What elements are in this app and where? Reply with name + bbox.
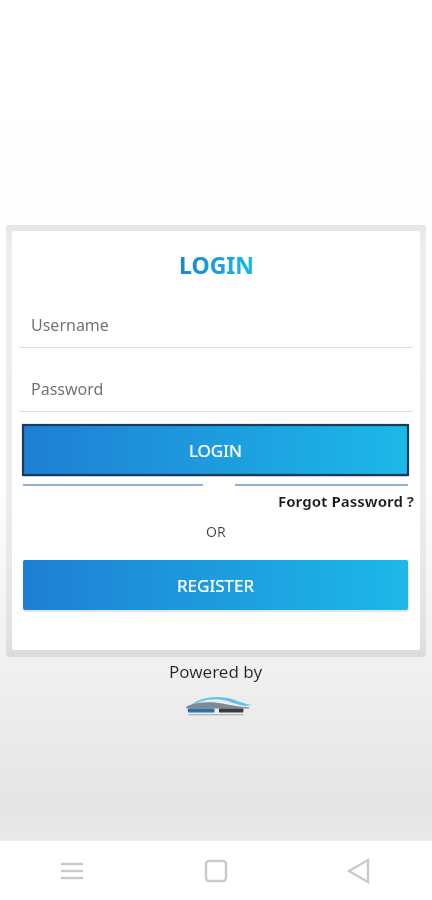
button[interactable]: Password <box>12 378 420 412</box>
button[interactable]: Recent apps <box>0 841 144 900</box>
staticText: LOGIN <box>189 439 242 462</box>
staticText: Password <box>31 378 104 400</box>
button[interactable]: Back <box>288 841 432 900</box>
staticText: Username <box>31 314 109 336</box>
button[interactable]: Forgot Password ? <box>278 489 420 513</box>
staticText: LOGIN <box>179 249 254 280</box>
staticText: OR <box>206 522 226 541</box>
staticText: REGISTER <box>177 574 254 597</box>
button[interactable]: REGISTER <box>23 560 408 610</box>
staticText: Powered by <box>169 660 263 683</box>
button[interactable]: Home <box>144 841 288 900</box>
button[interactable]: Username <box>12 314 420 348</box>
button[interactable]: LOGIN <box>23 425 408 475</box>
staticText: Forgot Password ? <box>278 491 414 511</box>
